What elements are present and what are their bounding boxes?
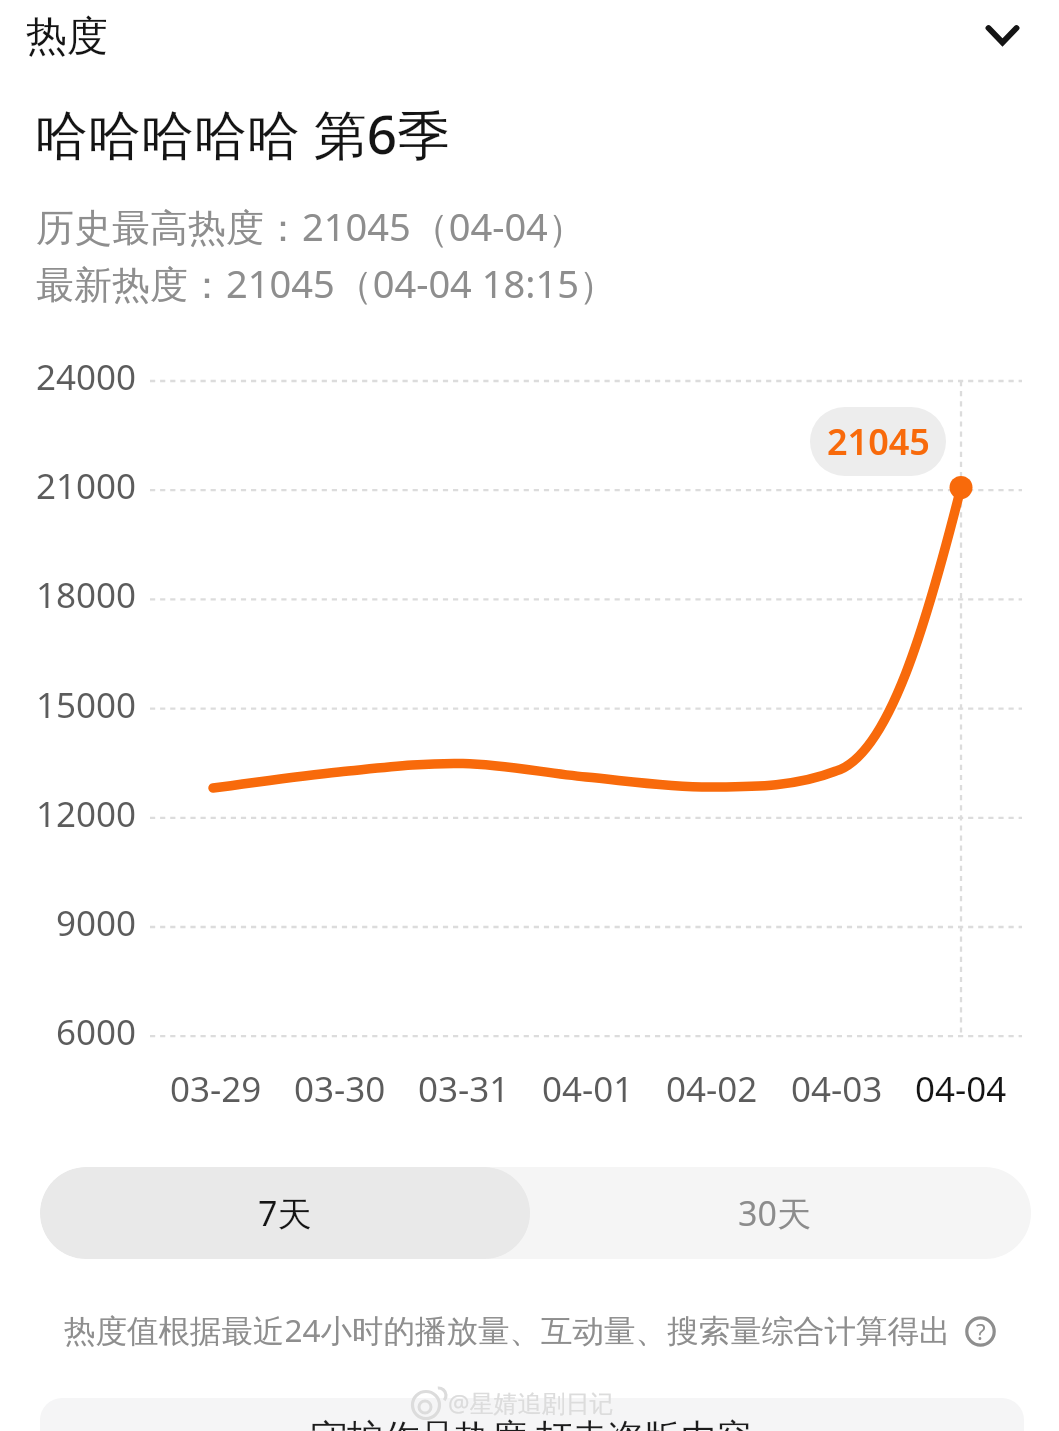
button[interactable]: Help <box>965 1316 996 1347</box>
button[interactable]: 热度值根据最近24小时的播放量、互动量、搜索量综合计算得出 <box>64 1308 951 1351</box>
staticText: 热度 <box>26 11 108 63</box>
staticText: @星婧追剧日记 <box>448 1386 614 1419</box>
staticText: 哈哈哈哈哈 第6季 <box>35 97 451 169</box>
staticText: 21045 <box>827 417 930 466</box>
staticText: 7天 <box>258 1190 312 1236</box>
staticText: 历史最高热度：21045（04-04） <box>36 200 586 252</box>
staticText: 03-31 <box>418 1065 510 1105</box>
staticText: 15000 <box>36 681 137 725</box>
staticText: 04-04 <box>915 1065 1007 1105</box>
staticText: 03-29 <box>170 1065 262 1105</box>
staticText: 03-30 <box>294 1065 386 1105</box>
staticText: 守护作品热度 打击盗版内容 <box>311 1412 753 1431</box>
staticText: 04-01 <box>542 1065 634 1105</box>
staticText: 最新热度：21045（04-04 18:15） <box>36 257 617 309</box>
button[interactable]: Collapse <box>966 0 1038 70</box>
staticText: 04-03 <box>791 1065 883 1105</box>
staticText: 24000 <box>36 353 137 397</box>
staticText: 21000 <box>36 462 137 506</box>
button[interactable]: 7天 <box>40 1167 530 1259</box>
staticText: 30天 <box>738 1190 811 1236</box>
staticText: ? <box>976 1316 986 1346</box>
staticText: 18000 <box>36 571 137 615</box>
button[interactable]: 30天 <box>530 1167 1031 1259</box>
staticText: 12000 <box>36 790 137 834</box>
staticText: 04-02 <box>666 1065 758 1105</box>
staticText: 9000 <box>56 899 137 943</box>
staticText: 6000 <box>56 1008 137 1052</box>
